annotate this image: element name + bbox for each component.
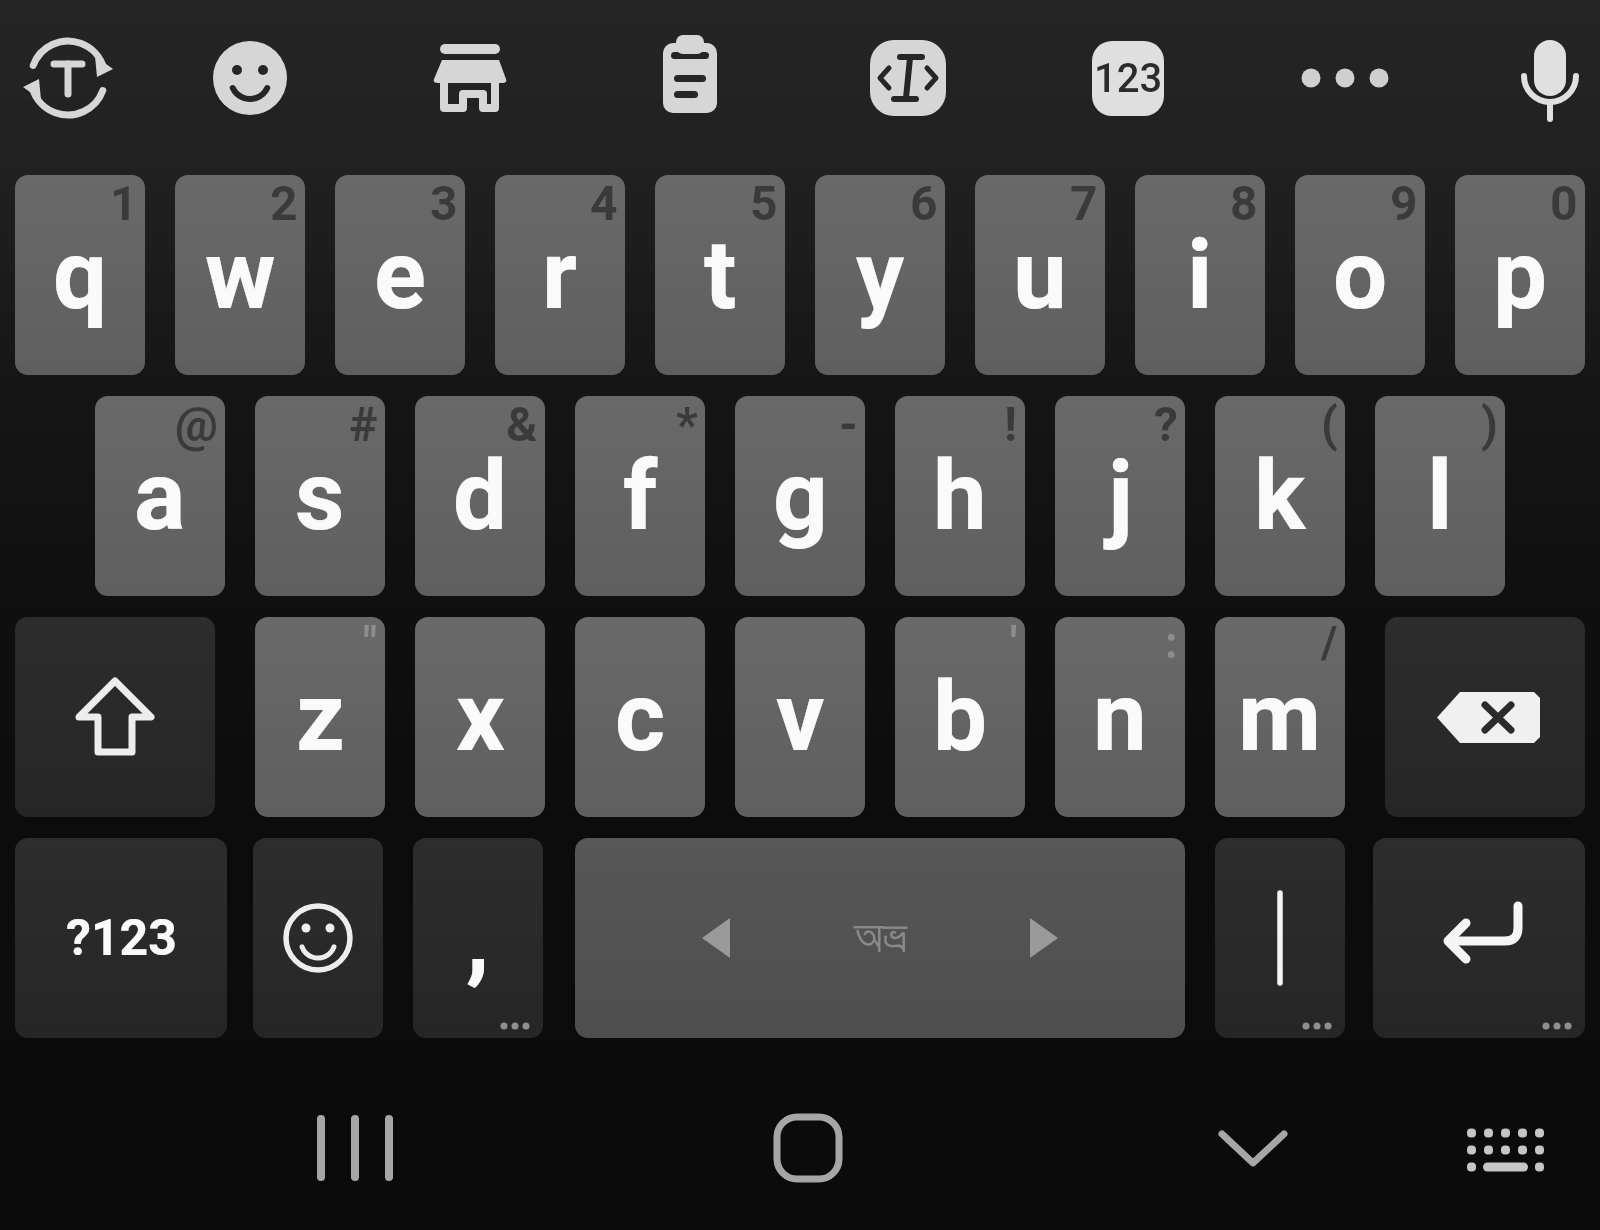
- staticText: b: [933, 661, 988, 774]
- staticText: /: [1321, 617, 1338, 669]
- button[interactable]: [195, 23, 305, 133]
- staticText: -: [839, 396, 858, 452]
- staticText: ): [1481, 396, 1498, 452]
- staticText: t: [704, 219, 737, 332]
- button[interactable]: y: [815, 175, 945, 375]
- button[interactable]: u: [975, 175, 1105, 375]
- staticText: *: [676, 396, 698, 452]
- button[interactable]: x: [415, 617, 545, 817]
- staticText: a: [134, 440, 186, 553]
- staticText: #: [349, 396, 378, 452]
- button[interactable]: o: [1295, 175, 1425, 375]
- staticText: ?123: [66, 909, 177, 968]
- staticText: k: [1254, 440, 1306, 553]
- staticText: &: [506, 396, 538, 452]
- staticText: ,: [466, 882, 490, 995]
- staticText: h: [933, 440, 987, 553]
- button[interactable]: s: [255, 396, 385, 596]
- button[interactable]: e: [335, 175, 465, 375]
- button[interactable]: [1385, 617, 1585, 817]
- staticText: q: [53, 219, 108, 332]
- staticText: 0: [1550, 175, 1578, 231]
- staticText: (: [1321, 396, 1338, 452]
- staticText: 6: [910, 175, 938, 231]
- staticText: অভ্র: [854, 915, 907, 961]
- staticText: f: [623, 440, 658, 553]
- staticText: ": [363, 617, 378, 669]
- staticText: r: [542, 219, 578, 332]
- staticText: 1: [110, 175, 138, 231]
- button[interactable]: h: [895, 396, 1025, 596]
- staticText: s: [295, 440, 345, 553]
- staticText: ': [1010, 617, 1018, 669]
- button[interactable]: [1495, 23, 1600, 133]
- button[interactable]: অভ্র: [575, 838, 1185, 1038]
- staticText: 5: [750, 175, 778, 231]
- button[interactable]: l: [1375, 396, 1505, 596]
- button[interactable]: n: [1055, 617, 1185, 817]
- staticText: p: [1493, 219, 1548, 332]
- staticText: m: [1238, 661, 1322, 774]
- staticText: 8: [1230, 175, 1258, 231]
- button[interactable]: m: [1215, 617, 1345, 817]
- staticText: 2: [270, 175, 298, 231]
- button[interactable]: d: [415, 396, 545, 596]
- button[interactable]: v: [735, 617, 865, 817]
- button[interactable]: b: [895, 617, 1025, 817]
- button[interactable]: [411, 23, 521, 133]
- button[interactable]: p: [1455, 175, 1585, 375]
- button[interactable]: j: [1055, 396, 1185, 596]
- staticText: :: [1165, 617, 1178, 669]
- button[interactable]: [13, 23, 123, 133]
- button[interactable]: [1290, 23, 1400, 133]
- button[interactable]: g: [735, 396, 865, 596]
- button[interactable]: f: [575, 396, 705, 596]
- staticText: j: [1108, 440, 1133, 553]
- staticText: u: [1013, 219, 1067, 332]
- staticText: d: [453, 440, 508, 553]
- staticText: 4: [590, 175, 618, 231]
- staticText: l: [1427, 440, 1453, 553]
- button[interactable]: c: [575, 617, 705, 817]
- staticText: e: [374, 219, 426, 332]
- button[interactable]: [743, 1083, 873, 1213]
- staticText: o: [1333, 219, 1388, 332]
- button[interactable]: [290, 1083, 420, 1213]
- button[interactable]: k: [1215, 396, 1345, 596]
- staticText: z: [296, 661, 345, 774]
- button[interactable]: [853, 23, 963, 133]
- button[interactable]: [635, 23, 745, 133]
- button[interactable]: [1188, 1083, 1318, 1213]
- staticText: y: [856, 219, 905, 332]
- button[interactable]: ?123: [15, 838, 227, 1038]
- staticText: @: [175, 396, 218, 452]
- button[interactable]: [1373, 838, 1585, 1038]
- staticText: 3: [430, 175, 458, 231]
- button[interactable]: t: [655, 175, 785, 375]
- staticText: v: [776, 661, 825, 774]
- button[interactable]: [15, 617, 215, 817]
- staticText: !: [1004, 396, 1018, 452]
- button[interactable]: a: [95, 396, 225, 596]
- staticText: n: [1093, 661, 1147, 774]
- button[interactable]: r: [495, 175, 625, 375]
- staticText: 123: [1094, 55, 1163, 102]
- button[interactable]: w: [175, 175, 305, 375]
- button[interactable]: z: [255, 617, 385, 817]
- button[interactable]: ,: [413, 838, 543, 1038]
- button[interactable]: q: [15, 175, 145, 375]
- staticText: ?: [1154, 396, 1178, 452]
- staticText: c: [615, 661, 666, 774]
- staticText: i: [1187, 219, 1213, 332]
- staticText: 7: [1070, 175, 1098, 231]
- button[interactable]: [1445, 1083, 1575, 1213]
- staticText: 9: [1390, 175, 1418, 231]
- button[interactable]: i: [1135, 175, 1265, 375]
- staticText: x: [456, 661, 505, 774]
- staticText: w: [205, 219, 276, 332]
- button[interactable]: [253, 838, 383, 1038]
- staticText: g: [773, 440, 828, 553]
- button[interactable]: 123: [1092, 41, 1164, 116]
- button[interactable]: [1215, 838, 1345, 1038]
